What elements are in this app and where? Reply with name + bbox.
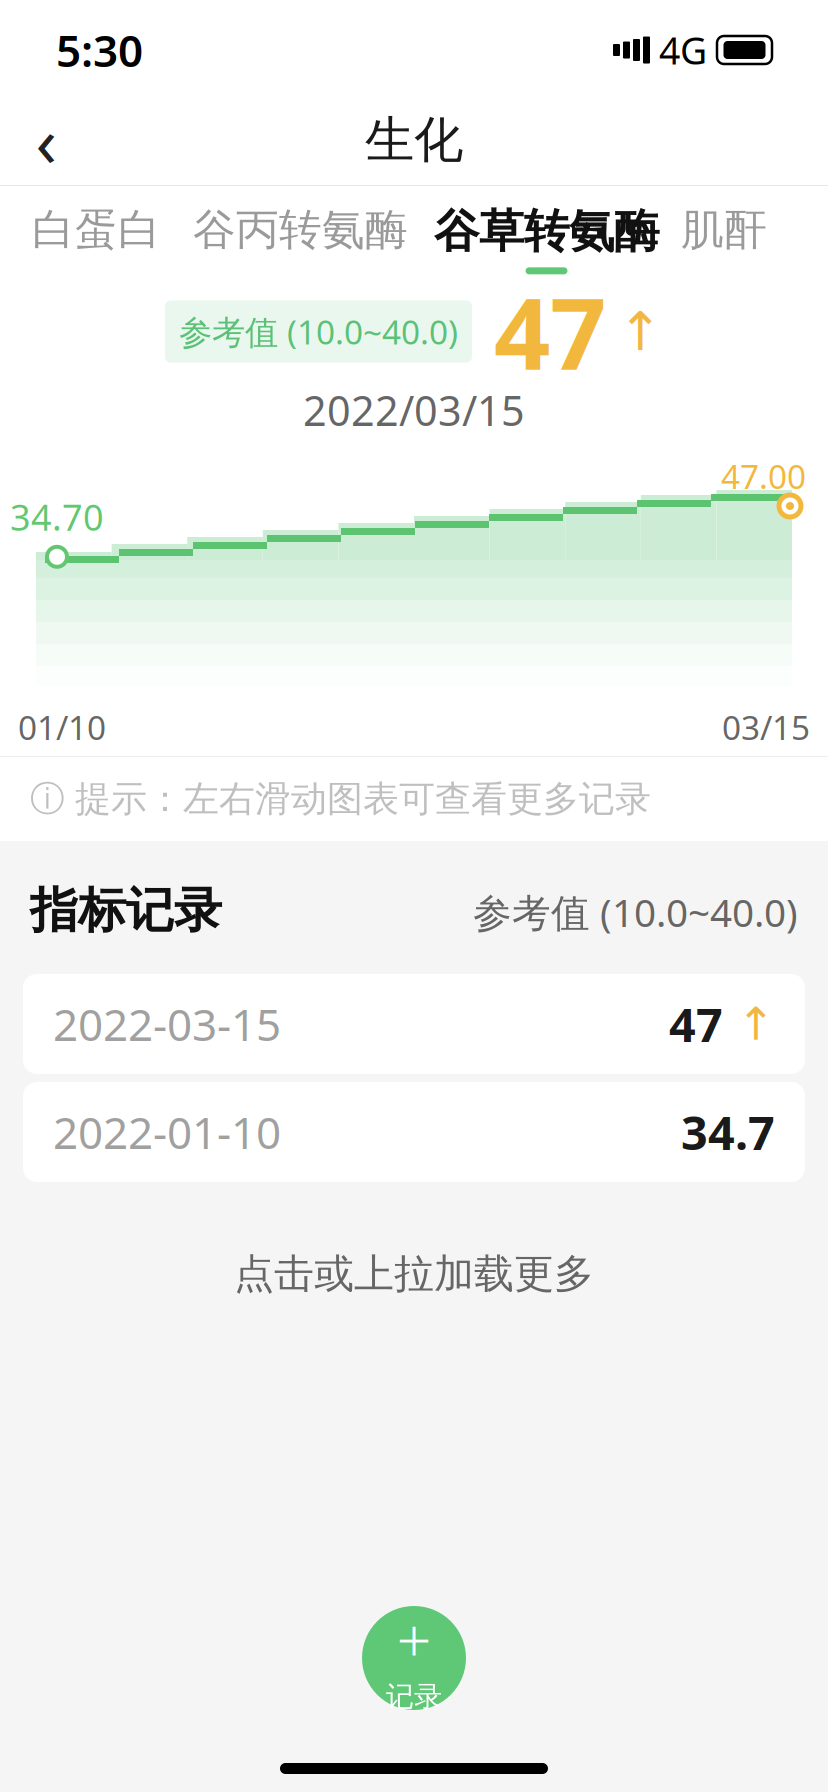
staticText: 47	[669, 993, 723, 1055]
button[interactable]: 点击或上拉加载更多	[0, 1244, 828, 1304]
staticText: 记录	[386, 1679, 442, 1714]
staticText: ‹	[35, 94, 56, 186]
staticText: ↑	[618, 301, 663, 362]
staticText: +	[396, 1598, 431, 1679]
staticText: 参考值 (10.0~40.0)	[179, 309, 458, 354]
button[interactable]: 添加记录	[362, 1606, 466, 1710]
staticText: 2022-01-10	[53, 1103, 281, 1161]
button[interactable]: 谷草转氨酶	[434, 204, 659, 274]
staticText: 2022/03/15	[303, 383, 525, 437]
staticText: 4G	[659, 25, 707, 75]
staticText: 指标记录	[30, 881, 222, 940]
staticText: 34.7	[681, 1101, 775, 1163]
button[interactable]: 肌酐	[681, 204, 767, 256]
staticText: 提示：左右滑动图表可查看更多记录	[75, 777, 651, 821]
staticText: 01/10	[18, 705, 106, 749]
staticText: 5:30	[56, 21, 143, 79]
button[interactable]: 白蛋白	[32, 204, 161, 256]
button[interactable]: 2022-01-10	[23, 1082, 805, 1182]
staticText: 2022-03-15	[53, 995, 281, 1053]
staticText: 参考值 (10.0~40.0)	[473, 886, 798, 938]
staticText: 谷草转氨酶	[434, 204, 659, 259]
staticText: 34.70	[10, 493, 104, 541]
staticText: 谷丙转氨酶	[193, 204, 408, 256]
staticText: 47.00	[721, 454, 806, 498]
staticText: 肌酐	[681, 204, 767, 256]
button[interactable]: 2022-03-15	[23, 974, 805, 1074]
staticText: 白蛋白	[32, 204, 161, 256]
staticText: 点击或上拉加载更多	[234, 1249, 594, 1298]
staticText: ⓘ	[30, 778, 65, 820]
staticText: 03/15	[722, 705, 810, 749]
button[interactable]: 谷丙转氨酶	[193, 204, 408, 256]
button[interactable]: 返回	[0, 94, 92, 186]
staticText: 生化	[365, 110, 463, 170]
staticText: ↑	[737, 998, 775, 1050]
staticText: 47	[494, 266, 606, 397]
